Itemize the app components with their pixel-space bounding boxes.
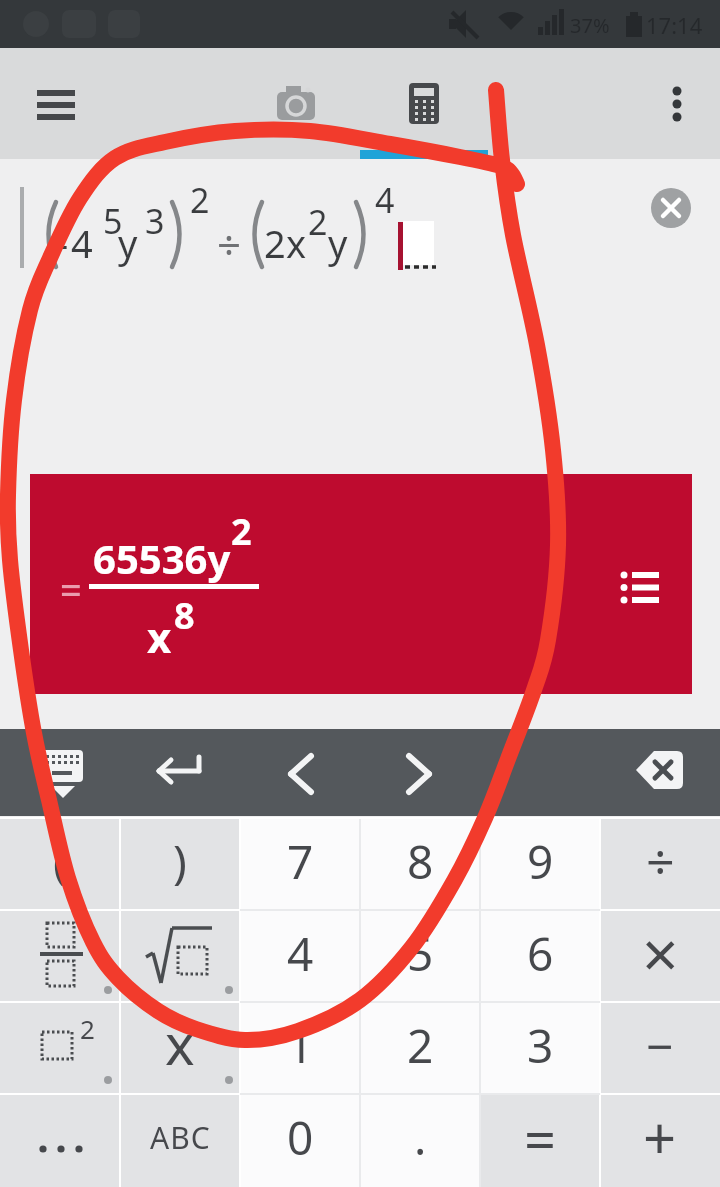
button[interactable] xyxy=(360,48,488,159)
staticText: 4 xyxy=(71,217,93,269)
button[interactable]: 6 xyxy=(480,910,600,1002)
staticText: 7 xyxy=(287,830,314,893)
staticText: 8 xyxy=(174,591,195,640)
staticText: 3 xyxy=(527,1014,554,1077)
staticText: 65536y xyxy=(93,531,231,585)
staticText: ( xyxy=(53,830,67,893)
button[interactable]: 7 xyxy=(240,818,360,910)
button[interactable] xyxy=(30,740,94,802)
button[interactable]: 4 xyxy=(240,910,360,1002)
button[interactable]: ) xyxy=(120,818,240,910)
button[interactable] xyxy=(0,1094,120,1187)
staticText: 4 xyxy=(287,922,314,985)
button[interactable] xyxy=(150,740,210,802)
button[interactable]: 9 xyxy=(480,818,600,910)
button[interactable]: ABC xyxy=(120,1094,240,1187)
button[interactable]: 8 xyxy=(360,818,480,910)
staticText: 5 xyxy=(103,198,123,244)
staticText: 5 xyxy=(407,922,434,985)
staticText: 4 xyxy=(375,177,395,223)
button[interactable]: + xyxy=(600,1094,720,1187)
button[interactable]: ( xyxy=(0,818,120,910)
staticText: = xyxy=(524,1100,557,1176)
staticText: − xyxy=(646,1013,674,1078)
button[interactable]: 0 xyxy=(240,1094,360,1187)
button[interactable]: ÷ xyxy=(600,818,720,910)
staticText: 6 xyxy=(527,922,554,985)
staticText: x xyxy=(147,608,172,665)
staticText: 2 xyxy=(308,199,328,245)
button[interactable]: 1 xyxy=(240,1002,360,1094)
button[interactable]: 3 xyxy=(480,1002,600,1094)
staticText: ABC xyxy=(150,1117,211,1158)
staticText: . xyxy=(414,1106,427,1169)
staticText: 1 xyxy=(287,1014,314,1077)
button[interactable] xyxy=(20,68,92,140)
staticText: 0 xyxy=(287,1106,314,1169)
button[interactable] xyxy=(625,740,695,802)
button[interactable] xyxy=(646,68,706,140)
staticText: x xyxy=(165,1005,195,1081)
staticText: + xyxy=(643,1098,677,1177)
staticText: 2 xyxy=(190,177,210,223)
button[interactable] xyxy=(232,48,360,159)
button[interactable] xyxy=(390,740,450,802)
staticText: ÷ xyxy=(217,215,242,272)
staticText: × xyxy=(642,910,679,997)
staticText: 37% xyxy=(570,12,610,39)
button[interactable] xyxy=(120,910,240,1002)
button[interactable]: x xyxy=(120,1002,240,1094)
staticText: y xyxy=(118,217,138,269)
staticText: = xyxy=(60,563,82,615)
staticText: 3 xyxy=(145,198,165,244)
button[interactable] xyxy=(0,910,120,1002)
staticText: - xyxy=(56,217,69,269)
staticText: y xyxy=(328,217,348,269)
staticText: x xyxy=(286,217,307,269)
staticText: 8 xyxy=(407,830,434,893)
button[interactable] xyxy=(30,474,692,694)
staticText: 2 xyxy=(407,1014,434,1077)
staticText: 9 xyxy=(527,830,554,893)
staticText: ) xyxy=(173,830,187,893)
button[interactable]: − xyxy=(600,1002,720,1094)
button[interactable] xyxy=(272,740,332,802)
button[interactable]: = xyxy=(480,1094,600,1187)
button[interactable]: × xyxy=(600,910,720,1002)
staticText: 2 xyxy=(264,217,286,269)
staticText: ÷ xyxy=(646,827,675,895)
button[interactable]: . xyxy=(360,1094,480,1187)
button[interactable] xyxy=(0,1002,120,1094)
button[interactable]: 2 xyxy=(360,1002,480,1094)
button[interactable] xyxy=(645,182,697,234)
staticText: 17:14 xyxy=(646,10,703,40)
staticText: 2 xyxy=(231,507,252,556)
button[interactable]: 5 xyxy=(360,910,480,1002)
staticText: 2 xyxy=(80,1011,95,1046)
